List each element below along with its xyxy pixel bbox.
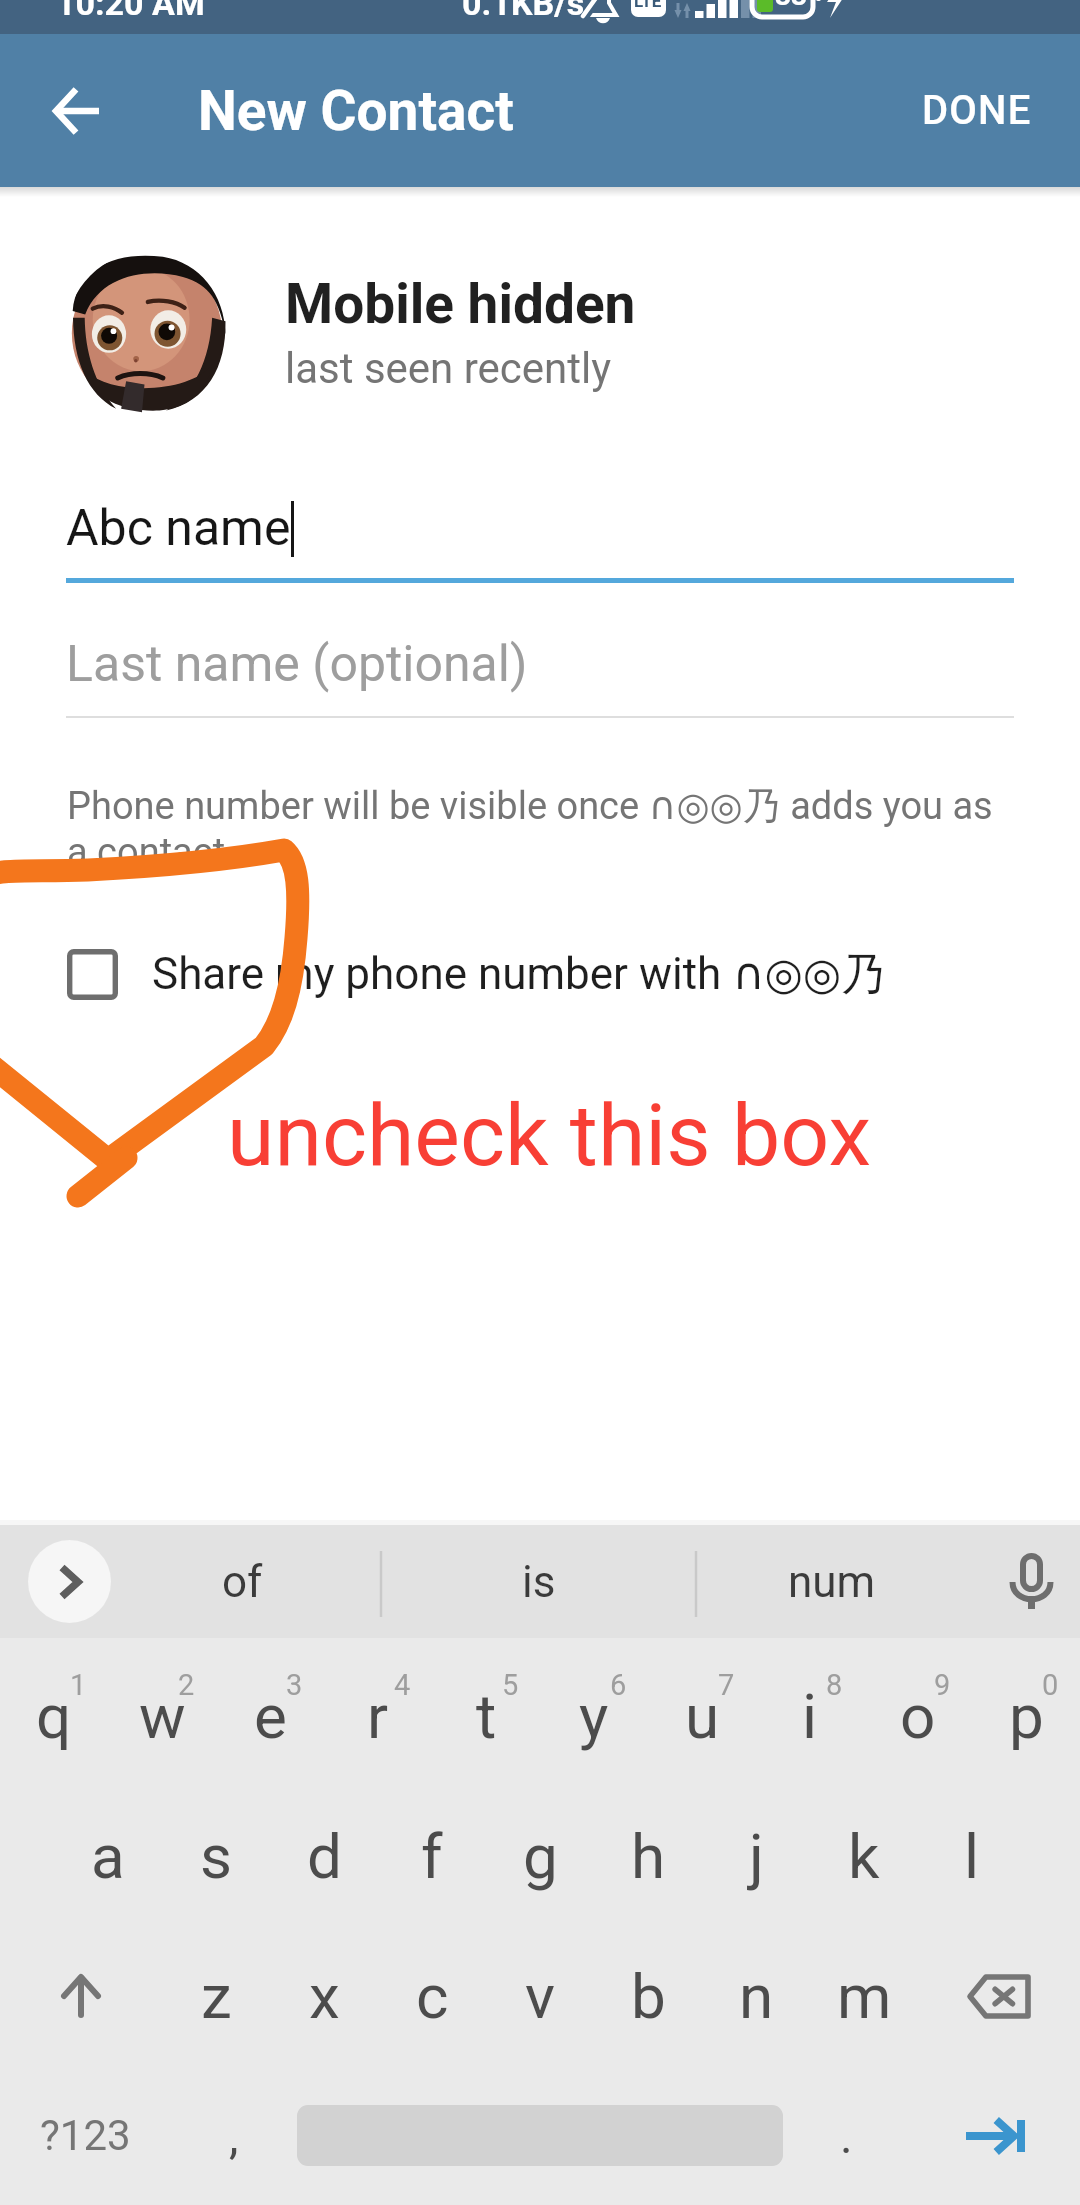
staticText: x — [309, 1960, 340, 2033]
button[interactable] — [0, 215, 1080, 450]
button[interactable]: num — [697, 1525, 967, 1638]
button[interactable]: t — [432, 1646, 540, 1786]
staticText: v — [525, 1960, 556, 2033]
staticText: j — [749, 1820, 764, 1893]
staticText: 33 — [775, 0, 808, 12]
button[interactable]: of — [120, 1525, 364, 1638]
button[interactable]: c — [378, 1926, 486, 2066]
staticText: 6 — [610, 1668, 627, 1702]
staticText: g — [523, 1820, 558, 1893]
staticText: m — [837, 1960, 892, 2033]
button[interactable]: d — [270, 1786, 378, 1926]
staticText: d — [307, 1820, 342, 1893]
button[interactable]: DONE — [874, 57, 1080, 164]
button[interactable]: s — [162, 1786, 270, 1926]
staticText: s — [200, 1820, 232, 1893]
button[interactable]: k — [810, 1786, 918, 1926]
staticText: f — [421, 1820, 443, 1893]
button[interactable]: p — [972, 1646, 1080, 1786]
button[interactable]: Next — [910, 2066, 1080, 2205]
staticText: 0 — [1042, 1668, 1059, 1702]
staticText: num — [788, 1556, 876, 1608]
staticText: is — [522, 1556, 556, 1608]
button[interactable]: More suggestions — [28, 1540, 111, 1623]
button[interactable]: v — [486, 1926, 594, 2066]
staticText: Share my phone number with ∩◎◎乃 — [152, 947, 886, 1002]
button[interactable]: m — [810, 1926, 918, 2066]
staticText: DONE — [922, 87, 1032, 134]
button[interactable]: is — [382, 1525, 696, 1638]
button[interactable]: z — [162, 1926, 270, 2066]
staticText: 4 — [394, 1668, 411, 1702]
button[interactable]: b — [594, 1926, 702, 2066]
staticText: u — [685, 1680, 720, 1753]
staticText: 8 — [826, 1668, 843, 1702]
button[interactable]: u — [648, 1646, 756, 1786]
staticText: y — [579, 1680, 609, 1753]
staticText: last seen recently — [285, 344, 612, 393]
button[interactable]: . — [783, 2066, 910, 2205]
staticText: l — [964, 1820, 980, 1893]
staticText: of — [222, 1556, 263, 1608]
button[interactable]: Share my phone number with ∩◎◎乃 — [67, 935, 947, 1013]
staticText: 7 — [718, 1668, 735, 1702]
button[interactable]: Contact photo — [66, 251, 233, 418]
staticText: New Contact — [198, 79, 514, 143]
staticText: i — [802, 1680, 818, 1753]
staticText: n — [739, 1960, 774, 2033]
button[interactable]: ?123 — [0, 2066, 170, 2205]
staticText: 10:20 AM — [56, 0, 205, 17]
button[interactable]: Backspace — [918, 1926, 1080, 2066]
staticText: Last name (optional) — [66, 635, 528, 694]
staticText: ?123 — [40, 2111, 131, 2160]
staticText: Mobile hidden — [285, 272, 636, 336]
button[interactable]: Last name field — [66, 608, 1014, 718]
button[interactable]: n — [702, 1926, 810, 2066]
button[interactable]: g — [486, 1786, 594, 1926]
staticText: r — [367, 1680, 389, 1753]
staticText: Abc name — [66, 499, 291, 558]
staticText: 1 — [70, 1668, 87, 1702]
button[interactable]: r — [324, 1646, 432, 1786]
staticText: p — [1009, 1680, 1044, 1753]
button[interactable]: Back — [32, 67, 120, 155]
button[interactable]: w — [108, 1646, 216, 1786]
button[interactable]: i — [756, 1646, 864, 1786]
staticText: k — [848, 1820, 880, 1893]
button[interactable]: y — [540, 1646, 648, 1786]
button[interactable]: a — [54, 1786, 162, 1926]
staticText: o — [900, 1680, 936, 1753]
button[interactable]: l — [918, 1786, 1026, 1926]
button[interactable]: j — [702, 1786, 810, 1926]
button[interactable]: Voice input — [986, 1543, 1062, 1619]
staticText: 2 — [178, 1668, 195, 1702]
staticText: a — [91, 1820, 125, 1893]
staticText: LTE — [634, 0, 662, 11]
staticText: q — [36, 1680, 72, 1753]
staticText: h — [631, 1820, 666, 1893]
staticText: 3 — [286, 1668, 303, 1702]
staticText: , — [229, 2108, 239, 2164]
button[interactable]: First name field — [66, 470, 1014, 583]
button[interactable]: e — [216, 1646, 324, 1786]
button[interactable]: Shift — [0, 1926, 162, 2066]
button[interactable]: f — [378, 1786, 486, 1926]
staticText: z — [201, 1960, 232, 2033]
staticText: e — [254, 1680, 287, 1753]
staticText: w — [139, 1680, 186, 1753]
staticText: b — [631, 1960, 666, 2033]
button[interactable]: x — [270, 1926, 378, 2066]
button[interactable]: q — [0, 1646, 108, 1786]
button[interactable]: o — [864, 1646, 972, 1786]
staticText: . — [840, 2108, 853, 2164]
staticText: Phone number will be visible once ∩◎◎乃 a… — [67, 782, 1017, 874]
staticText: 5 — [502, 1668, 519, 1702]
staticText: t — [476, 1680, 497, 1753]
staticText: 0.1KB/s — [462, 0, 585, 17]
button[interactable]: , — [170, 2066, 297, 2205]
staticText: c — [416, 1960, 449, 2033]
button[interactable]: h — [594, 1786, 702, 1926]
staticText: 9 — [934, 1668, 951, 1702]
staticText: uncheck this box — [227, 1085, 872, 1186]
